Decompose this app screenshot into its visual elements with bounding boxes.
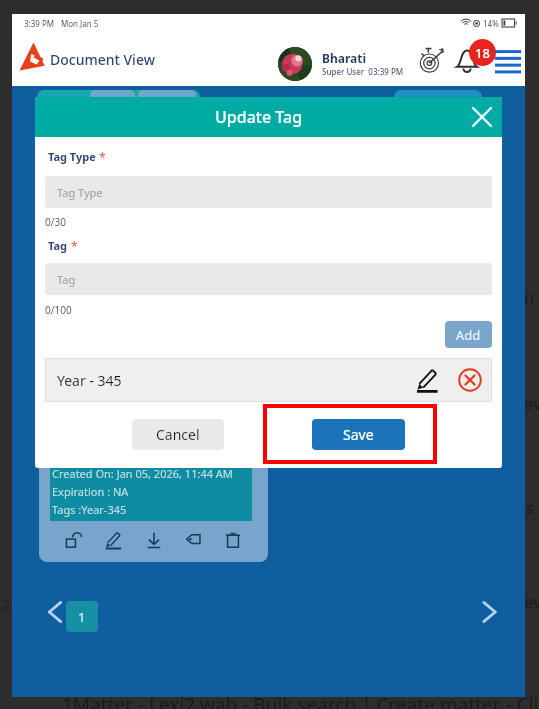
- staticText: Created On: Jan 05, 2026, 11:44 AM: [52, 466, 233, 481]
- button[interactable]: 1: [66, 601, 98, 632]
- staticText: Expiration : NA: [52, 484, 129, 499]
- staticText: 1: [78, 608, 86, 626]
- staticText: 2: [2, 594, 11, 614]
- staticText: ev: [524, 392, 539, 415]
- button[interactable]: Add: [445, 321, 492, 348]
- staticText: Add: [456, 326, 481, 344]
- staticText: n: [524, 286, 535, 309]
- staticText: *: [99, 149, 106, 165]
- button[interactable]: Previous page: [38, 595, 72, 629]
- staticText: Save: [343, 425, 374, 444]
- staticText: s: [526, 496, 535, 519]
- button[interactable]: Remove tag: [454, 364, 486, 396]
- staticText: Update Tag: [215, 106, 303, 128]
- staticText: 0/100: [45, 303, 72, 317]
- button[interactable]: Targets: [418, 46, 446, 74]
- staticText: Year - 345: [57, 371, 122, 390]
- button[interactable]: Menu: [493, 46, 523, 74]
- button[interactable]: Unlock: [61, 527, 87, 553]
- button[interactable]: Save: [312, 419, 405, 450]
- staticText: 0/30: [45, 215, 66, 229]
- staticText: Super User 03:39 PM: [322, 66, 404, 77]
- button[interactable]: Download: [141, 527, 167, 553]
- button[interactable]: Close: [462, 97, 502, 137]
- button[interactable]: Next page: [472, 595, 506, 629]
- staticText: Tags :Year-345: [52, 502, 127, 517]
- staticText: Tag: [48, 238, 68, 253]
- staticText: 14%: [483, 18, 499, 29]
- staticText: Tag: [57, 272, 76, 287]
- staticText: 18: [475, 44, 490, 62]
- staticText: Cancel: [156, 425, 200, 444]
- button[interactable]: Edit: [101, 527, 127, 553]
- staticText: 3:39 PM: [24, 18, 55, 29]
- button[interactable]: Cancel: [132, 419, 224, 450]
- staticText: Document View: [50, 50, 155, 69]
- staticText: *: [71, 238, 78, 254]
- staticText: Bharati: [322, 50, 367, 66]
- staticText: Tag Type: [57, 185, 103, 200]
- button[interactable]: Tag: [180, 527, 206, 553]
- button[interactable]: Delete: [220, 527, 246, 553]
- staticText: ev: [524, 590, 539, 613]
- staticText: Mon Jan 5: [61, 18, 99, 29]
- staticText: 1Matter - Lexi2 wab - Bulk search | Crea…: [62, 692, 539, 709]
- button[interactable]: Edit tag: [412, 364, 444, 396]
- staticText: Tag Type: [48, 149, 96, 164]
- button[interactable]: Notifications: [454, 47, 480, 73]
